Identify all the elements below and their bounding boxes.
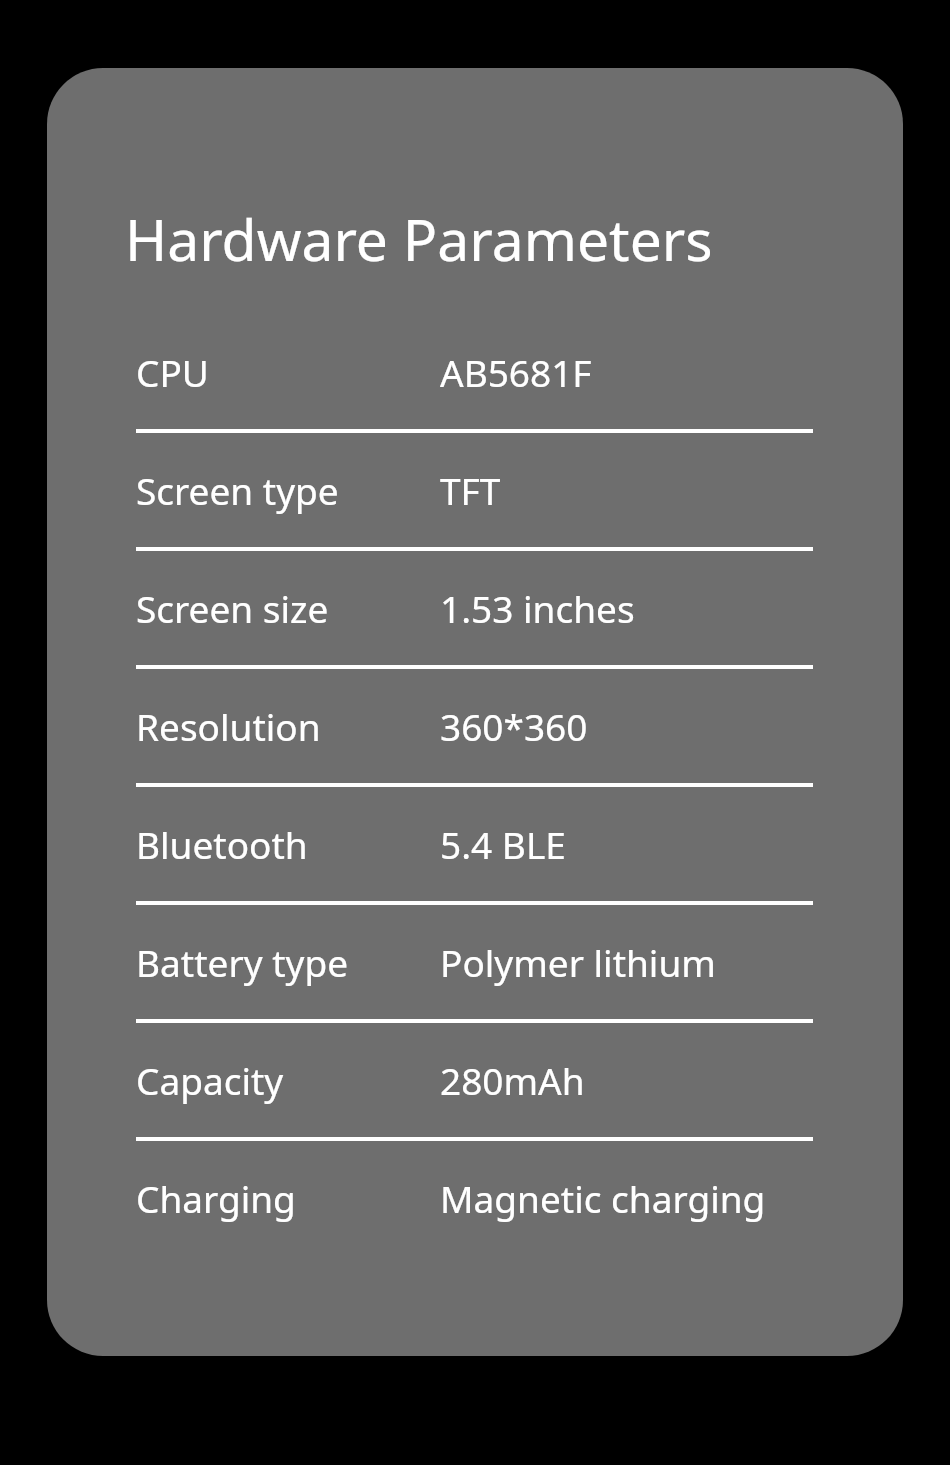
button[interactable]: Charging method (136, 1141, 813, 1255)
staticText: Hardware Parameters (125, 200, 713, 278)
staticText: Screen size (136, 583, 440, 633)
staticText: Magnetic charging (440, 1173, 766, 1223)
button[interactable]: Capacity (136, 1023, 813, 1137)
staticText: Capacity (136, 1055, 440, 1105)
staticText: Polymer lithium battery (440, 937, 813, 987)
staticText: Charging method (136, 1173, 440, 1223)
staticText: Bluetooth (136, 819, 440, 869)
staticText: 280mAh (440, 1055, 585, 1105)
button[interactable]: Battery type (136, 905, 813, 1019)
button[interactable]: Screen type (136, 433, 813, 547)
button[interactable]: Bluetooth (136, 787, 813, 901)
staticText: TFT (440, 465, 501, 515)
staticText: 360*360 (440, 701, 588, 751)
staticText: AB5681F (440, 347, 592, 397)
staticText: CPU (136, 347, 440, 397)
staticText: Screen type (136, 465, 440, 515)
staticText: Resolution (136, 701, 440, 751)
staticText: 1.53 inches (440, 583, 635, 633)
button[interactable]: CPU (136, 315, 813, 429)
staticText: 5.4 BLE (440, 819, 566, 869)
staticText: Battery type (136, 937, 440, 987)
button[interactable]: Screen size (136, 551, 813, 665)
button[interactable]: Resolution (136, 669, 813, 783)
